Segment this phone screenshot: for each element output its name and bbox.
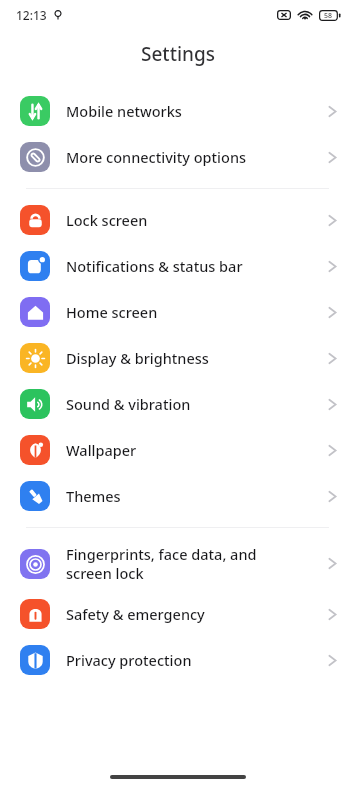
staticText: Mobile networks — [66, 101, 320, 121]
staticText: Sound & vibration — [66, 394, 320, 414]
staticText: Themes — [66, 486, 320, 506]
staticText: Settings — [141, 41, 215, 67]
button[interactable]: Lock screen — [0, 197, 355, 243]
button[interactable]: Privacy protection — [0, 637, 355, 683]
staticText: 58 — [324, 11, 333, 21]
staticText: Home screen — [66, 302, 320, 322]
staticText: Fingerprints, face data, and screen lock — [66, 544, 320, 583]
staticText: Display & brightness — [66, 348, 320, 368]
staticText: Wallpaper — [66, 440, 320, 460]
button[interactable]: Display & brightness — [0, 335, 355, 381]
button[interactable]: Themes — [0, 473, 355, 519]
staticText: Notifications & status bar — [66, 256, 320, 276]
button[interactable]: Home screen — [0, 289, 355, 335]
staticText: More connectivity options — [66, 147, 320, 167]
staticText: Privacy protection — [66, 650, 320, 670]
button[interactable]: More connectivity options — [0, 134, 355, 180]
button[interactable]: Safety & emergency — [0, 591, 355, 637]
staticText: Safety & emergency — [66, 604, 320, 624]
button[interactable]: Sound & vibration — [0, 381, 355, 427]
button[interactable]: Wallpaper — [0, 427, 355, 473]
staticText: 12:13 — [16, 7, 47, 23]
staticText: Lock screen — [66, 210, 320, 230]
button[interactable]: Mobile networks — [0, 88, 355, 134]
button[interactable]: Notifications & status bar — [0, 243, 355, 289]
button[interactable]: Fingerprints, face data, and screen lock — [0, 536, 355, 591]
